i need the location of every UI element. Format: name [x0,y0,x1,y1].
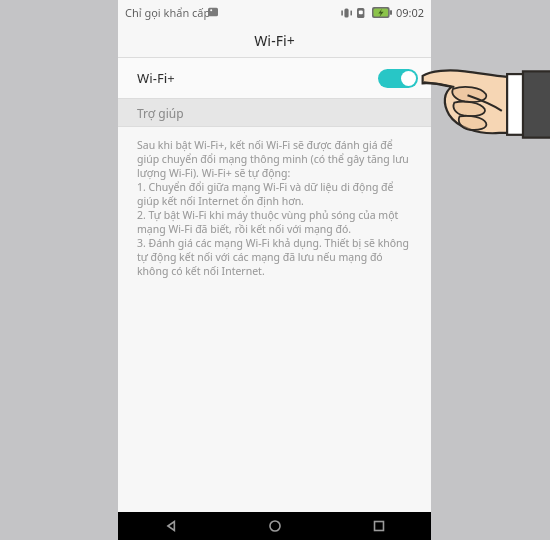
staticText: Wi-Fi+ [137,69,175,87]
staticText: Trợ giúp [137,105,184,121]
button[interactable]: Recent apps [327,512,431,540]
button[interactable]: Wi-Fi+ [118,58,431,98]
button[interactable]: Trợ giúp [118,99,431,126]
other: Pointing hand [420,52,550,144]
button[interactable]: Wi-Fi+ toggle, on [378,69,418,88]
staticText: Wi-Fi+ [254,31,295,50]
button[interactable]: Home [223,512,327,540]
staticText: Chỉ gọi khẩn cấp [125,5,211,20]
staticText: 09:02 [396,5,425,20]
staticText: Sau khi bật Wi-Fi+, kết nối Wi-Fi sẽ đượ… [137,138,414,278]
button[interactable]: Back [118,512,223,540]
